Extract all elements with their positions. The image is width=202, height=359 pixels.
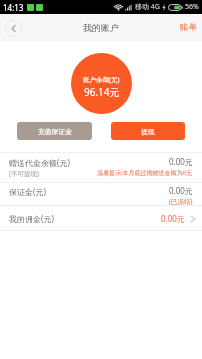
staticText: (不可提现) bbox=[9, 169, 39, 178]
staticText: 移动 4G bbox=[135, 2, 160, 12]
button[interactable]: 账单 bbox=[174, 16, 202, 39]
staticText: 账单 bbox=[180, 22, 197, 33]
staticText: 我的佣金(元) bbox=[9, 213, 54, 224]
button[interactable]: 提现 bbox=[111, 122, 185, 140]
staticText: (已冻结) bbox=[169, 197, 193, 205]
staticText: 96.14元 bbox=[84, 85, 120, 99]
button[interactable]: Back bbox=[3, 18, 23, 38]
staticText: 14:13 bbox=[3, 2, 24, 13]
staticText: 账户余额(元) bbox=[83, 75, 120, 84]
staticText: 充值保证金 bbox=[38, 127, 72, 136]
staticText: 保证金(元) bbox=[9, 186, 46, 197]
staticText: 提现 bbox=[141, 127, 155, 136]
staticText: 赠送代金余额(元) bbox=[9, 157, 70, 168]
button[interactable]: 充值保证金 bbox=[17, 122, 92, 140]
staticText: 0.00元 bbox=[169, 185, 193, 196]
staticText: 我的账户 bbox=[83, 22, 119, 33]
button[interactable]: 我的佣金(元) bbox=[0, 206, 202, 230]
button[interactable]: 保证金(元) bbox=[0, 183, 202, 205]
button[interactable]: 赠送代金余额(元) bbox=[0, 153, 202, 182]
staticText: 温馨提示:本月底过期赠送金额为0元 bbox=[97, 169, 193, 177]
staticText: 0.00元 bbox=[161, 213, 185, 224]
staticText: 0.00元 bbox=[169, 156, 193, 167]
staticText: 56% bbox=[185, 2, 199, 12]
